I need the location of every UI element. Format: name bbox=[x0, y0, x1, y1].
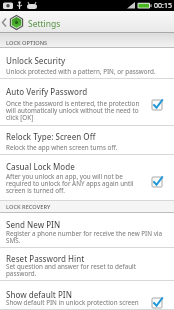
staticText: Settings bbox=[28, 18, 61, 30]
staticText: Show default PIN bbox=[6, 289, 72, 300]
staticText: Set question and answer for reset to def… bbox=[6, 262, 136, 277]
staticText: Unlock protected with a pattern, PIN, or… bbox=[6, 67, 156, 76]
button[interactable]: Relock Type: Screen Off bbox=[0, 126, 174, 155]
staticText: Send New PIN bbox=[6, 219, 61, 230]
staticText: Show default PIN in unlock protection sc… bbox=[6, 298, 139, 307]
button[interactable]: Reset Password Hint bbox=[0, 248, 174, 281]
button[interactable]: Show default PIN bbox=[0, 281, 174, 310]
button[interactable]: Settings bbox=[0, 11, 174, 33]
button[interactable]: Send New PIN bbox=[0, 213, 174, 248]
staticText: After you unlock an app, you will not be… bbox=[6, 172, 134, 194]
staticText: Reset Password Hint bbox=[6, 253, 85, 264]
button[interactable]: Unlock Security bbox=[0, 48, 174, 79]
staticText: Once the password is entered, the protec… bbox=[6, 99, 140, 121]
button[interactable]: Casual Lock Mode bbox=[0, 155, 174, 201]
button[interactable]: Auto Verify Password bbox=[0, 79, 174, 126]
staticText: Register a phone number for receive the … bbox=[6, 229, 163, 244]
staticText: 00:15 bbox=[154, 1, 172, 11]
staticText: Casual Lock Mode bbox=[6, 161, 75, 172]
staticText: Auto Verify Password bbox=[6, 86, 88, 97]
staticText: Relock Type: Screen Off bbox=[6, 131, 96, 142]
staticText: Relock the app when screen turns off. bbox=[6, 143, 118, 152]
staticText: LOCK OPTIONS bbox=[6, 39, 48, 47]
staticText: LOCK RECOVERY bbox=[6, 203, 51, 211]
staticText: Unlock Security bbox=[6, 55, 66, 66]
